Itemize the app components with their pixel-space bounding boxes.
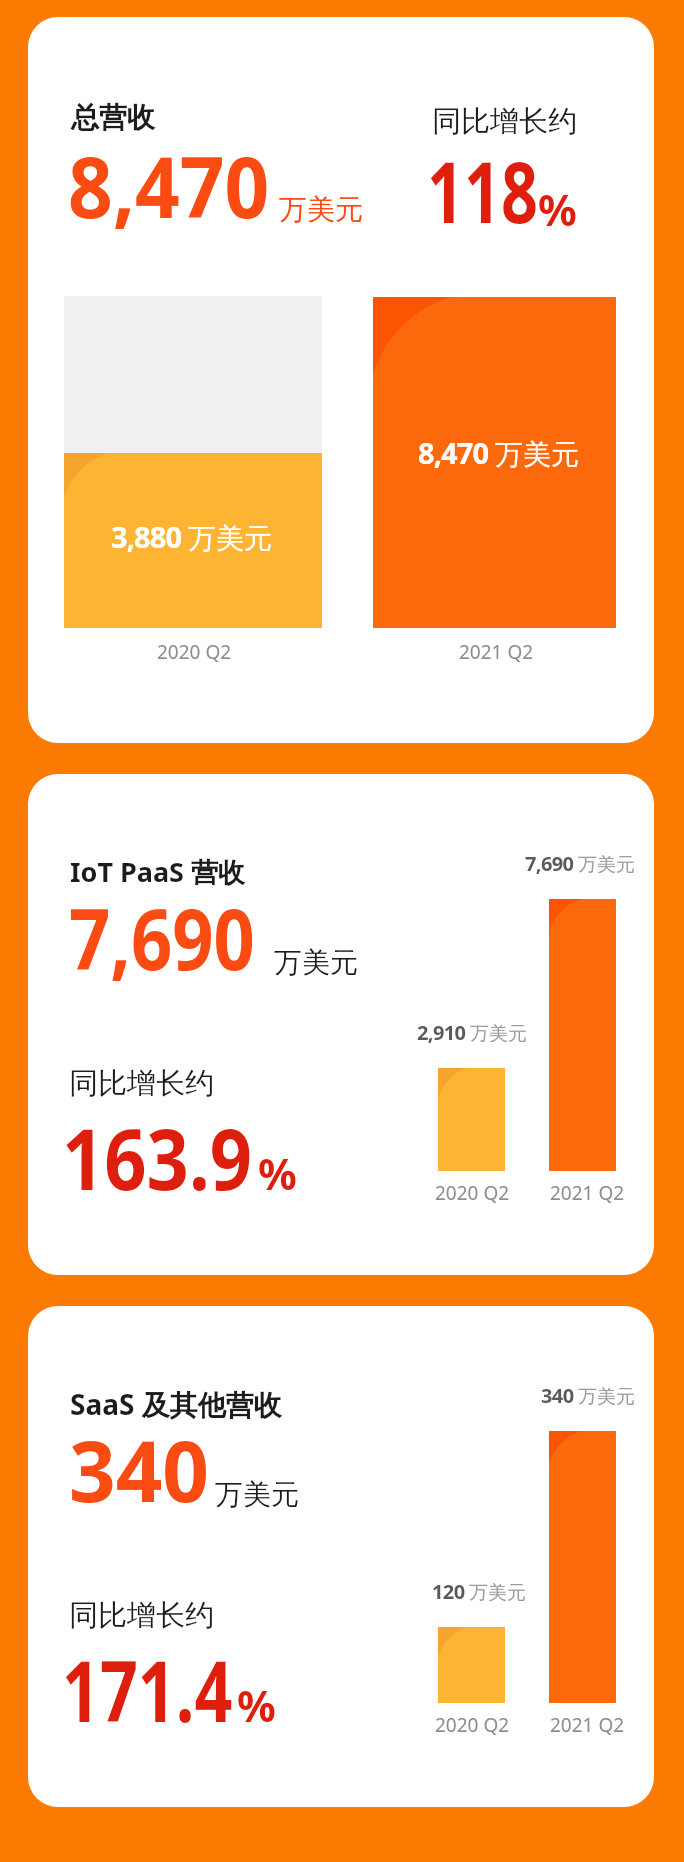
staticText: 340 万美元 — [541, 1382, 636, 1409]
staticText: 同比增长约 — [432, 103, 577, 140]
staticText: 340 — [69, 1411, 209, 1527]
staticText: 2021 Q2 — [550, 1180, 625, 1206]
staticText: IoT PaaS 营收 — [70, 853, 245, 890]
staticText: 171.4 — [62, 1631, 233, 1747]
staticText: 7,690 — [69, 879, 255, 995]
staticText: 2020 Q2 — [157, 639, 232, 665]
staticText: 2020 Q2 — [435, 1712, 510, 1738]
staticText: 120 万美元 — [432, 1578, 527, 1605]
button[interactable]: 总营收 — [28, 17, 654, 743]
staticText: 万美元 — [274, 945, 358, 980]
button[interactable]: SaaS 及其他营收 — [28, 1306, 654, 1807]
staticText: 万美元 — [215, 1477, 299, 1512]
staticText: 同比增长约 — [69, 1597, 214, 1634]
staticText: 3,880 万美元 — [111, 517, 272, 556]
staticText: 同比增长约 — [69, 1065, 214, 1102]
staticText: 7,690 万美元 — [525, 850, 636, 877]
staticText: 2,910 万美元 — [417, 1019, 528, 1046]
staticText: % — [258, 1144, 297, 1203]
staticText: 8,470 万美元 — [418, 433, 579, 472]
staticText: 2021 Q2 — [550, 1712, 625, 1738]
staticText: % — [237, 1676, 276, 1735]
staticText: 8,470 — [68, 127, 269, 243]
staticText: 总营收 — [71, 100, 155, 135]
staticText: 118 — [427, 132, 538, 248]
staticText: 163.9 — [62, 1099, 252, 1215]
staticText: 万美元 — [279, 192, 363, 227]
staticText: 2020 Q2 — [435, 1180, 510, 1206]
button[interactable]: IoT PaaS 营收 — [28, 774, 654, 1275]
staticText: SaaS 及其他营收 — [70, 1385, 282, 1423]
staticText: 2021 Q2 — [459, 639, 534, 665]
staticText: % — [538, 180, 577, 239]
